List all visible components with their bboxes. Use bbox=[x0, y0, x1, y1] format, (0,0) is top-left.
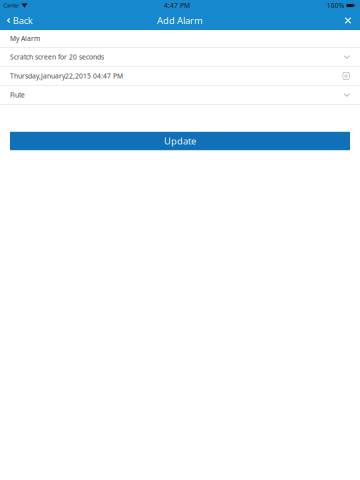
staticText: Back bbox=[13, 14, 33, 27]
staticText: Update bbox=[164, 135, 196, 147]
button[interactable]: Close bbox=[336, 11, 360, 30]
button[interactable]: Back bbox=[0, 11, 42, 30]
staticText: Scratch screen for 20 seconds bbox=[10, 53, 104, 61]
button[interactable]: Update bbox=[10, 132, 350, 150]
button[interactable]: Scratch screen for 20 seconds bbox=[0, 48, 360, 67]
button[interactable]: Flute bbox=[0, 86, 360, 105]
button[interactable]: Thursday,January22,2015 04:47 PM bbox=[0, 67, 360, 86]
staticText: My Alarm bbox=[10, 34, 40, 43]
staticText: Thursday,January22,2015 04:47 PM bbox=[10, 72, 123, 80]
staticText: 4:47 PM bbox=[164, 1, 190, 10]
staticText: Flute bbox=[10, 91, 25, 99]
staticText: Carrier bbox=[3, 2, 19, 9]
staticText: Add Alarm bbox=[157, 14, 203, 27]
staticText: 100% bbox=[327, 1, 345, 10]
button[interactable]: My Alarm bbox=[0, 30, 360, 48]
